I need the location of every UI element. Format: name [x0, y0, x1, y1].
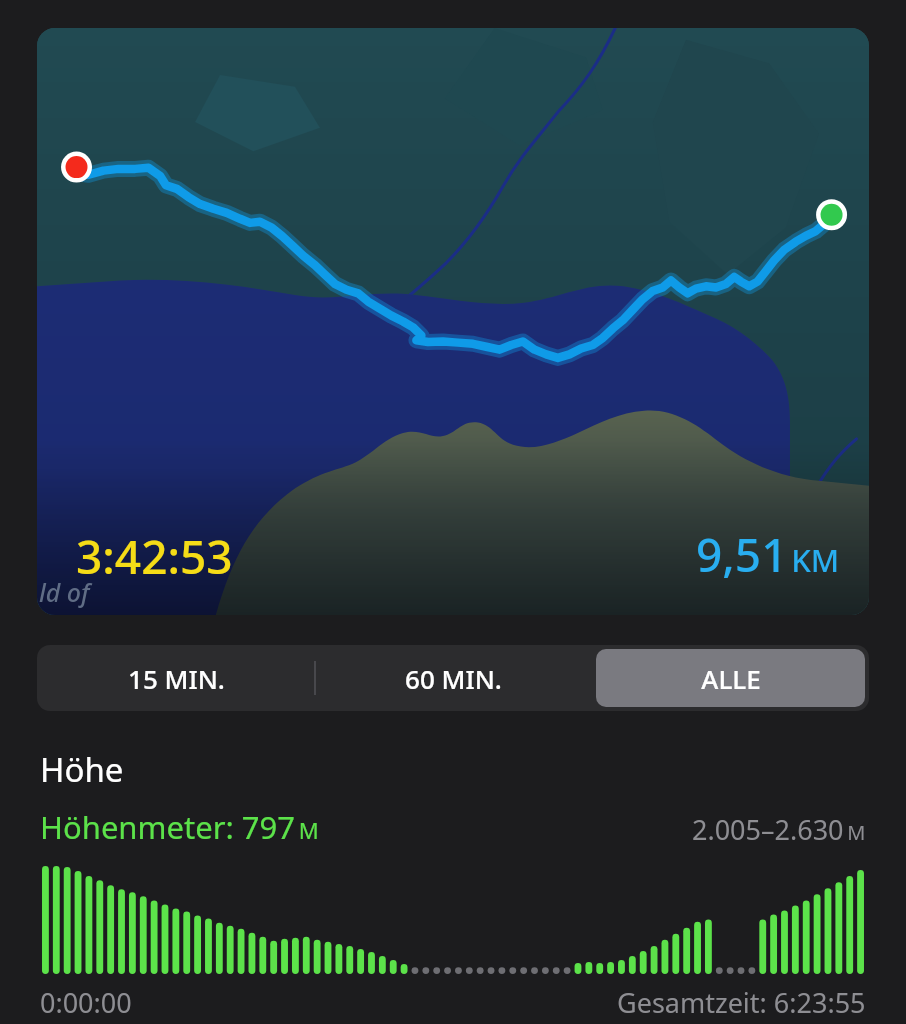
staticText: 15 MIN.: [128, 661, 225, 696]
button[interactable]: ld of: [37, 28, 869, 615]
staticText: Gesamtzeit: 6:23:55: [617, 984, 866, 1021]
staticText: 2.005–2.630 M: [692, 811, 866, 848]
staticText: ld of: [39, 575, 90, 609]
staticText: 9,51 KM: [696, 523, 840, 586]
staticText: 60 MIN.: [405, 661, 502, 696]
button[interactable]: 60 MIN.: [319, 649, 588, 707]
button[interactable]: ALLE: [596, 649, 865, 707]
staticText: Höhenmeter: 797 M: [40, 806, 319, 848]
staticText: 0:00:00: [40, 984, 132, 1021]
staticText: Höhe: [40, 747, 124, 792]
staticText: ALLE: [701, 661, 761, 696]
button[interactable]: 15 MIN.: [41, 649, 311, 707]
staticText: 3:42:53: [76, 525, 233, 588]
